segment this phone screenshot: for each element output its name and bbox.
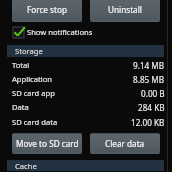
staticText: 9.14 MB	[133, 60, 165, 71]
staticText: Application	[12, 74, 53, 84]
staticText: 284 KB	[138, 102, 165, 113]
button[interactable]: Storage	[7, 45, 164, 57]
staticText: Uninstall	[108, 4, 142, 15]
staticText: Clear data	[105, 138, 145, 149]
button[interactable]: Force stop	[12, 0, 82, 22]
button[interactable]: Move to SD card	[12, 133, 82, 154]
staticText: Show notifications	[27, 27, 93, 37]
staticText: Force stop	[27, 4, 67, 15]
staticText: Move to SD card	[16, 138, 79, 149]
button[interactable]: Clear data	[90, 133, 160, 154]
button[interactable]: Show notifications	[13, 25, 172, 39]
staticText: Storage	[15, 46, 43, 56]
staticText: SD card data	[12, 117, 58, 127]
button[interactable]: Uninstall	[90, 0, 160, 22]
staticText: Cache	[15, 161, 37, 171]
staticText: 0.00 B	[141, 88, 165, 99]
staticText: Data	[12, 102, 29, 112]
button[interactable]: Cache	[7, 160, 164, 171]
staticText: 12.00 KB	[131, 117, 165, 128]
staticText: Total	[12, 60, 30, 70]
staticText: SD card app	[12, 88, 55, 98]
staticText: 8.85 MB	[133, 74, 165, 85]
